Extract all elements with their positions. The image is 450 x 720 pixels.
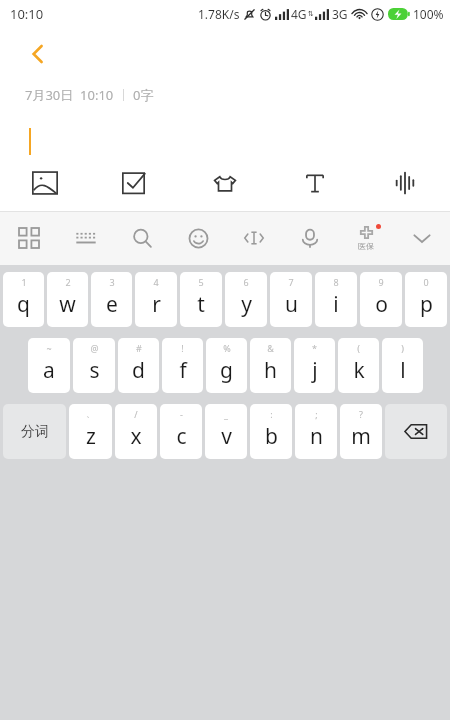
staticText: i [333,290,339,319]
staticText: 6 [243,276,249,288]
button[interactable]: Voice input [282,211,338,265]
staticText: g [220,356,233,385]
button[interactable]: ( [338,338,379,393]
button[interactable]: ~ [28,338,70,393]
staticText: n [310,422,323,451]
staticText: ; [315,408,318,420]
staticText: % [223,342,231,354]
staticText: f [179,356,187,385]
staticText: b [265,422,278,451]
staticText: d [132,356,145,385]
staticText: # [136,342,142,354]
staticText: 8 [333,276,339,288]
staticText: v [221,422,232,451]
button[interactable]: 9 [360,272,402,327]
staticText: 100% [413,6,444,22]
button[interactable]: Keyboard layout [57,211,114,265]
button[interactable]: Emoji [170,211,226,265]
button[interactable]: - [160,404,202,459]
staticText: z [86,422,96,451]
button[interactable]: 8 [315,272,357,327]
staticText: 1 [21,276,27,288]
button[interactable]: ! [162,338,203,393]
button[interactable]: 7 [270,272,312,327]
button[interactable]: % [206,338,247,393]
staticText: 7月30日 10:10 [25,86,114,104]
staticText: ⇅ [308,10,314,18]
button[interactable]: Back [18,34,58,74]
button[interactable]: ; [295,404,337,459]
button[interactable]: 5 [180,272,222,327]
staticText: x [130,422,142,451]
button[interactable]: 0 [405,272,447,327]
staticText: 、 [86,408,95,419]
button[interactable]: ? [340,404,382,459]
button[interactable]: * [294,338,335,393]
staticText: 7 [288,276,294,288]
staticText: c [176,422,187,451]
staticText: 4G [291,6,307,22]
staticText: 9 [378,276,384,288]
staticText: 3 [109,276,115,288]
staticText: t [197,290,205,319]
button[interactable]: ) [382,338,423,393]
staticText: 1.78K/s [198,6,240,22]
button[interactable]: 4 [135,272,177,327]
staticText: ! [181,342,184,354]
staticText: 4 [153,276,159,288]
button[interactable]: Insert image [0,155,90,211]
staticText: @ [90,342,99,354]
staticText: 3G [332,6,348,22]
button[interactable]: Checklist [90,155,180,211]
button[interactable]: 、 [69,404,112,459]
staticText: 5 [198,276,204,288]
button[interactable]: 3 [91,272,132,327]
button[interactable]: Move cursor [226,211,282,265]
staticText: o [375,290,388,319]
staticText: p [420,290,433,319]
staticText: & [267,342,274,354]
button[interactable]: Style [180,155,270,211]
button[interactable]: Medical insurance [338,211,394,265]
staticText: - [180,408,183,420]
staticText: h [264,356,277,385]
staticText: ( [357,342,360,354]
staticText: 10:10 [10,5,44,23]
staticText: q [17,290,30,319]
staticText: * [312,342,317,354]
button[interactable]: 6 [225,272,267,327]
button[interactable]: 分词 [3,404,66,459]
button[interactable]: / [115,404,157,459]
button[interactable]: : [250,404,292,459]
staticText: u [285,290,298,319]
staticText: a [43,356,55,385]
staticText: m [351,422,371,451]
staticText: ? [359,408,363,420]
button[interactable]: Search [114,211,170,265]
staticText: 0字 [133,86,154,104]
button[interactable]: Apps [0,211,57,265]
button[interactable]: # [118,338,159,393]
staticText: : [270,408,273,420]
staticText: w [59,290,76,319]
button[interactable]: _ [205,404,247,459]
button[interactable]: 1 [3,272,44,327]
button[interactable]: Backspace [385,404,447,459]
staticText: ~ [46,342,52,354]
button[interactable]: Voice [360,155,450,211]
button[interactable]: @ [73,338,115,393]
button[interactable]: Text format [270,155,360,211]
staticText: 0 [423,276,429,288]
staticText: r [152,290,161,319]
staticText: _ [224,408,228,420]
staticText: k [353,356,365,385]
staticText: s [89,356,100,385]
staticText: l [400,356,406,385]
staticText: e [106,290,118,319]
staticText: / [134,408,138,420]
button[interactable]: & [250,338,291,393]
staticText: y [241,290,252,319]
staticText: 分词 [21,423,49,441]
button[interactable]: 2 [47,272,88,327]
button[interactable]: Hide keyboard [394,211,450,265]
